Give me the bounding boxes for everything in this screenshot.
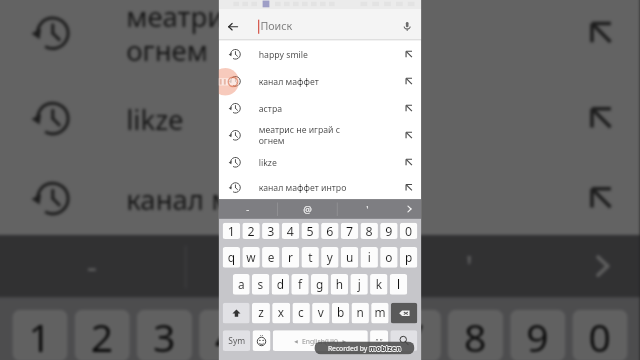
button[interactable]: Use this suggestion (396, 148, 421, 175)
staticText: 5 (306, 223, 314, 239)
button[interactable]: b (332, 303, 349, 323)
button[interactable]: - (219, 199, 277, 219)
button[interactable]: i (360, 247, 378, 268)
button[interactable]: Backspace (391, 303, 417, 323)
button[interactable]: f (291, 274, 309, 295)
button[interactable]: астра (219, 94, 421, 121)
staticText: s (258, 276, 264, 292)
button[interactable]: Search (390, 330, 417, 351)
button[interactable]: ' (375, 235, 562, 297)
staticText: happy smile (259, 48, 394, 60)
staticText: g (316, 276, 323, 292)
button[interactable]: 0 (572, 310, 628, 360)
button[interactable]: u (341, 247, 358, 268)
button[interactable]: Use this suggestion (562, 155, 640, 235)
button[interactable]: 7 (341, 223, 358, 239)
button[interactable]: 8 (448, 310, 503, 360)
button[interactable]: канал маффет интро (0, 155, 640, 235)
staticText: k (376, 276, 382, 292)
button[interactable]: y (321, 247, 338, 268)
button[interactable]: v (312, 303, 329, 323)
button[interactable]: likze (219, 148, 421, 175)
button[interactable]: e (262, 247, 279, 268)
staticText: 9 (526, 310, 549, 360)
button[interactable]: 8 (360, 223, 378, 239)
staticText: 6 (340, 310, 363, 360)
button[interactable]: канал маффет интро (219, 174, 421, 199)
button[interactable]: 9 (380, 223, 398, 239)
button[interactable]: 5 (301, 223, 319, 239)
button[interactable]: d (272, 274, 289, 295)
button[interactable]: 6 (321, 223, 338, 239)
button[interactable]: n (351, 303, 369, 323)
button[interactable]: j (350, 274, 368, 295)
button[interactable]: q (223, 247, 240, 268)
button[interactable]: 1 (223, 223, 240, 239)
button[interactable]: Use this suggestion (396, 94, 421, 121)
staticText: mobizen (369, 343, 401, 353)
button[interactable]: 3 (137, 310, 192, 360)
button[interactable]: c (292, 303, 310, 323)
button[interactable]: Shift (223, 303, 250, 323)
button[interactable]: Screen recorder (219, 68, 239, 96)
button[interactable]: s (252, 274, 269, 295)
button[interactable]: r (282, 247, 299, 268)
button[interactable]: k (370, 274, 387, 295)
button[interactable]: More candidates (562, 235, 640, 297)
button[interactable]: @ (278, 199, 337, 219)
button[interactable]: t (301, 247, 319, 268)
button[interactable]: @ (187, 235, 373, 297)
button[interactable]: меатрис не играй с огнем (0, 0, 640, 75)
button[interactable]: 9 (510, 310, 565, 360)
button[interactable]: w (242, 247, 260, 268)
staticText: h (336, 276, 343, 292)
button[interactable]: Sym (223, 330, 250, 351)
button[interactable]: likze (0, 75, 640, 160)
button[interactable]: Space (273, 330, 368, 351)
button[interactable]: канал маффет (219, 67, 421, 94)
button[interactable]: Emoji (252, 330, 270, 351)
button[interactable]: Use this suggestion (396, 174, 421, 199)
staticText: ' (366, 202, 368, 215)
button[interactable]: Back (219, 11, 247, 42)
button[interactable]: Voice search (393, 11, 421, 42)
button[interactable]: h (331, 274, 348, 295)
staticText: 9 (385, 223, 393, 239)
button[interactable]: More candidates (396, 199, 421, 219)
button[interactable]: 7 (386, 310, 441, 360)
button[interactable]: l (390, 274, 407, 295)
button[interactable]: z (252, 303, 270, 323)
button[interactable]: a (233, 274, 250, 295)
staticText: 1 (228, 223, 235, 239)
button[interactable]: 3 (262, 223, 279, 239)
button[interactable]: p (400, 247, 417, 268)
button[interactable]: ”.” (370, 330, 388, 351)
button[interactable]: ' (337, 199, 396, 219)
button[interactable]: меатрис не играй с огнем (219, 121, 421, 148)
button[interactable]: 0 (400, 223, 417, 239)
button[interactable]: 4 (282, 223, 299, 239)
button[interactable]: 5 (261, 310, 316, 360)
staticText: меатрис не играй с огнем (126, 0, 553, 68)
button[interactable]: 2 (75, 310, 130, 360)
button[interactable]: 4 (199, 310, 254, 360)
button[interactable]: Use this suggestion (562, 0, 640, 75)
button[interactable]: Use this suggestion (396, 121, 421, 148)
staticText: астра (259, 102, 394, 114)
staticText: f (298, 276, 303, 292)
staticText: b (337, 305, 344, 321)
button[interactable]: Use this suggestion (396, 40, 421, 67)
button[interactable]: 6 (324, 310, 379, 360)
button[interactable]: x (272, 303, 290, 323)
button[interactable]: happy smile (219, 40, 421, 67)
button[interactable]: 1 (12, 310, 67, 360)
button[interactable]: Use this suggestion (562, 75, 640, 160)
button[interactable]: Use this suggestion (396, 67, 421, 94)
staticText: j (358, 276, 361, 292)
button[interactable]: 2 (242, 223, 260, 239)
button[interactable]: g (311, 274, 328, 295)
button[interactable]: m (371, 303, 389, 323)
button[interactable]: o (380, 247, 398, 268)
staticText: Recorded by (328, 344, 369, 353)
